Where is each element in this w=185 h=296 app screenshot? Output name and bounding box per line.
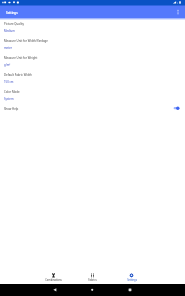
button[interactable]: Measure Unit for Width/Yardage [0,36,185,53]
button[interactable]: Measure Unit for Weight [0,53,185,70]
staticText: Default Fabric Width [4,73,32,77]
staticText: Combinations [45,278,62,281]
staticText: Medium [4,29,15,33]
button[interactable]: Combinations [34,271,73,284]
button[interactable]: Fabrics [73,271,112,284]
button[interactable]: More options [174,8,182,16]
staticText: Settings [127,278,137,281]
staticText: Measure Unit for Width/Yardage [4,39,48,43]
button[interactable]: Default Fabric Width [0,70,185,87]
button[interactable]: Show Help [0,104,185,121]
button[interactable]: Picture Quality [0,19,185,36]
staticText: g/m² [4,63,11,67]
staticText: Settings [6,11,18,15]
staticText: 150 cm [4,80,14,84]
staticText: Measure Unit for Weight [4,56,38,60]
button[interactable]: Settings [112,271,151,284]
button[interactable]: Color Mode [0,87,185,104]
staticText: System [4,97,14,101]
button[interactable]: Show Help [171,105,182,113]
staticText: Picture Quality [4,22,25,26]
staticText: meter [4,46,12,50]
staticText: Fabrics [88,278,97,281]
staticText: Show Help [4,107,19,111]
staticText: Color Mode [4,90,20,94]
